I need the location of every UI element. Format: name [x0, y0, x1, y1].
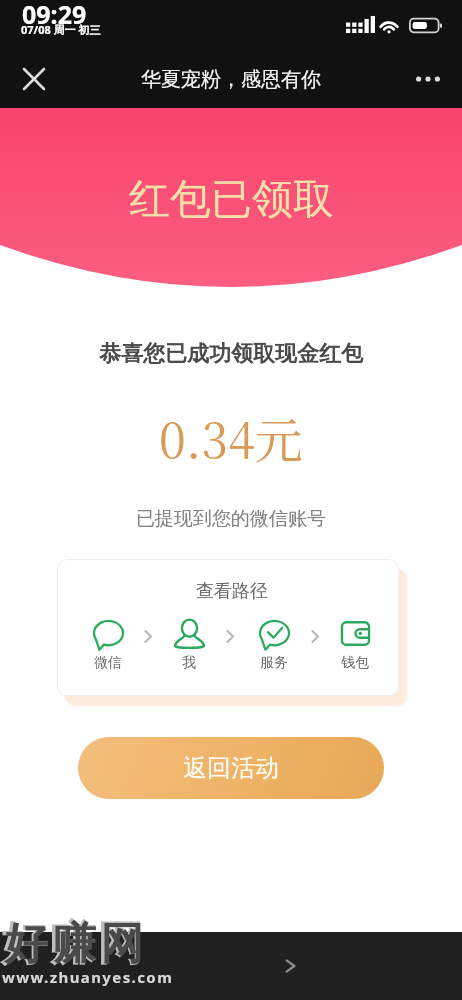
staticText: www.zhuanyes.com [2, 967, 174, 987]
staticText: 微信 [94, 654, 122, 672]
button[interactable]: 我 [165, 617, 213, 672]
button[interactable]: 服务 [250, 617, 298, 672]
staticText: 返回活动 [183, 753, 279, 783]
staticText: 服务 [260, 654, 288, 672]
staticText: 好赚网 [2, 917, 146, 971]
staticText: 我 [182, 654, 196, 672]
staticText: 已提现到您的微信账号 [136, 507, 326, 531]
staticText: 恭喜您已成功领取现金红包 [99, 340, 363, 368]
staticText: 好赚网 [0, 915, 144, 973]
staticText: 07/08 周一 初三 [21, 22, 101, 37]
button[interactable]: More options [406, 57, 450, 101]
button[interactable]: Close [12, 57, 56, 101]
button[interactable]: 微信 [84, 617, 132, 672]
staticText: 0.34元 [159, 403, 303, 472]
staticText: 钱包 [341, 654, 369, 672]
staticText: 华夏宠粉，感恩有你 [141, 67, 321, 92]
staticText: 红包已领取 [129, 174, 334, 226]
button[interactable]: 钱包 [331, 617, 379, 672]
button[interactable]: 返回活动 [78, 737, 384, 799]
staticText: 查看路径 [196, 580, 268, 603]
staticText: 09:29 [22, 0, 87, 31]
button[interactable]: 查看路径 [57, 559, 399, 696]
